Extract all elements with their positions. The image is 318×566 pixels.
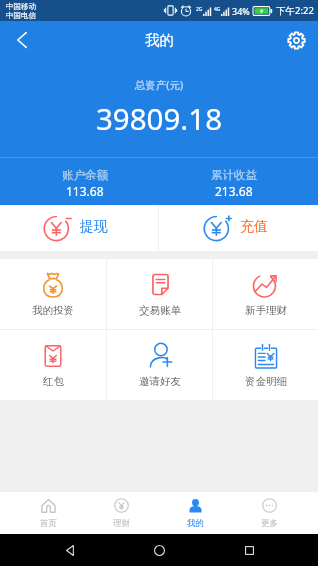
button[interactable]: 我的 [158, 492, 232, 534]
staticText: 更多 [261, 518, 278, 529]
staticText: 交易账单 [139, 304, 181, 317]
staticText: 资金明细 [245, 375, 287, 388]
button[interactable]: 新手理财 [213, 259, 318, 329]
staticText: 中国移动 [6, 2, 36, 11]
staticText: 账户余额 [62, 168, 108, 182]
staticText: 新手理财 [245, 304, 287, 317]
button[interactable]: 交易账单 [107, 259, 212, 329]
staticText: 我的 [145, 31, 174, 49]
staticText: 首页 [40, 518, 57, 529]
staticText: 累计收益 [211, 168, 257, 182]
staticText: 理财 [113, 518, 130, 529]
button[interactable]: Settings [274, 21, 318, 59]
staticText: 充值 [240, 218, 268, 236]
staticText: 邀请好友 [139, 375, 181, 388]
staticText: 34% [232, 5, 250, 17]
button[interactable]: 资金明细 [213, 330, 318, 400]
staticText: 2G [196, 6, 203, 13]
staticText: 我的投资 [32, 304, 74, 317]
staticText: 39809.18 [0, 98, 318, 138]
staticText: 中国电信 [6, 11, 36, 20]
button[interactable]: Recents [229, 534, 269, 566]
button[interactable]: Back [50, 534, 90, 566]
staticText: 总资产(元) [0, 78, 318, 92]
button[interactable]: 更多 [232, 492, 306, 534]
button[interactable]: 红包 [0, 330, 106, 400]
button[interactable]: 首页 [12, 492, 85, 534]
staticText: 213.68 [215, 183, 253, 199]
button[interactable]: 充值 [159, 205, 318, 251]
staticText: 下午2:22 [276, 4, 314, 17]
staticText: 提现 [80, 218, 108, 236]
button[interactable]: 邀请好友 [107, 330, 212, 400]
staticText: 113.68 [66, 183, 104, 199]
staticText: 红包 [43, 375, 64, 388]
button[interactable]: Back [0, 21, 44, 59]
button[interactable]: Home [139, 534, 179, 566]
button[interactable]: 理财 [85, 492, 158, 534]
button[interactable]: 我的投资 [0, 259, 106, 329]
staticText: 我的 [187, 518, 204, 529]
button[interactable]: 提现 [0, 205, 158, 251]
staticText: 4G [214, 6, 221, 13]
